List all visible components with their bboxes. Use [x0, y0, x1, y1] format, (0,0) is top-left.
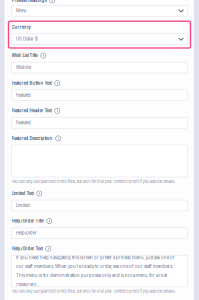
staticText: Help/Order [16, 231, 37, 236]
button[interactable]: Menu [11, 5, 187, 16]
button[interactable]: Featured [11, 117, 187, 128]
staticText: Wish List Title [11, 53, 37, 58]
staticText: Help/Order Title [11, 219, 43, 224]
staticText: Currency [11, 25, 30, 30]
button[interactable]: US Dollar $ [11, 34, 187, 44]
staticText: Help/Order Text [11, 246, 42, 251]
staticText: Menu [16, 8, 26, 13]
button[interactable]: Wish list [11, 62, 187, 73]
staticText: This menu is for demonstration purposes … [16, 273, 167, 278]
staticText: Wish list [16, 65, 31, 70]
staticText: US Dollar $ [16, 37, 38, 42]
staticText: Featured Button Text [11, 81, 51, 86]
staticText: If you need help navigating this screen … [16, 255, 175, 260]
staticText: Featured [16, 120, 31, 125]
button[interactable]: Featured [11, 90, 187, 101]
staticText: Featured [16, 93, 31, 98]
staticText: Featured Header Text [11, 108, 51, 113]
staticText: Limited [16, 203, 30, 208]
staticText: Preview Headings [11, 0, 46, 3]
staticText: Limited Text [11, 191, 33, 196]
button[interactable]: Help/Order [11, 228, 187, 238]
staticText: You can only use plain text in this fiel… [11, 179, 175, 184]
staticText: our staff members. When you're ready to … [16, 264, 173, 269]
button[interactable]: Limited [11, 200, 187, 211]
button[interactable]: If you need help navigating this screen … [11, 255, 187, 287]
staticText: Featured Description [11, 136, 52, 141]
staticText: restaurant. [16, 281, 37, 287]
staticText: You can only use plain text in this fiel… [11, 289, 175, 294]
